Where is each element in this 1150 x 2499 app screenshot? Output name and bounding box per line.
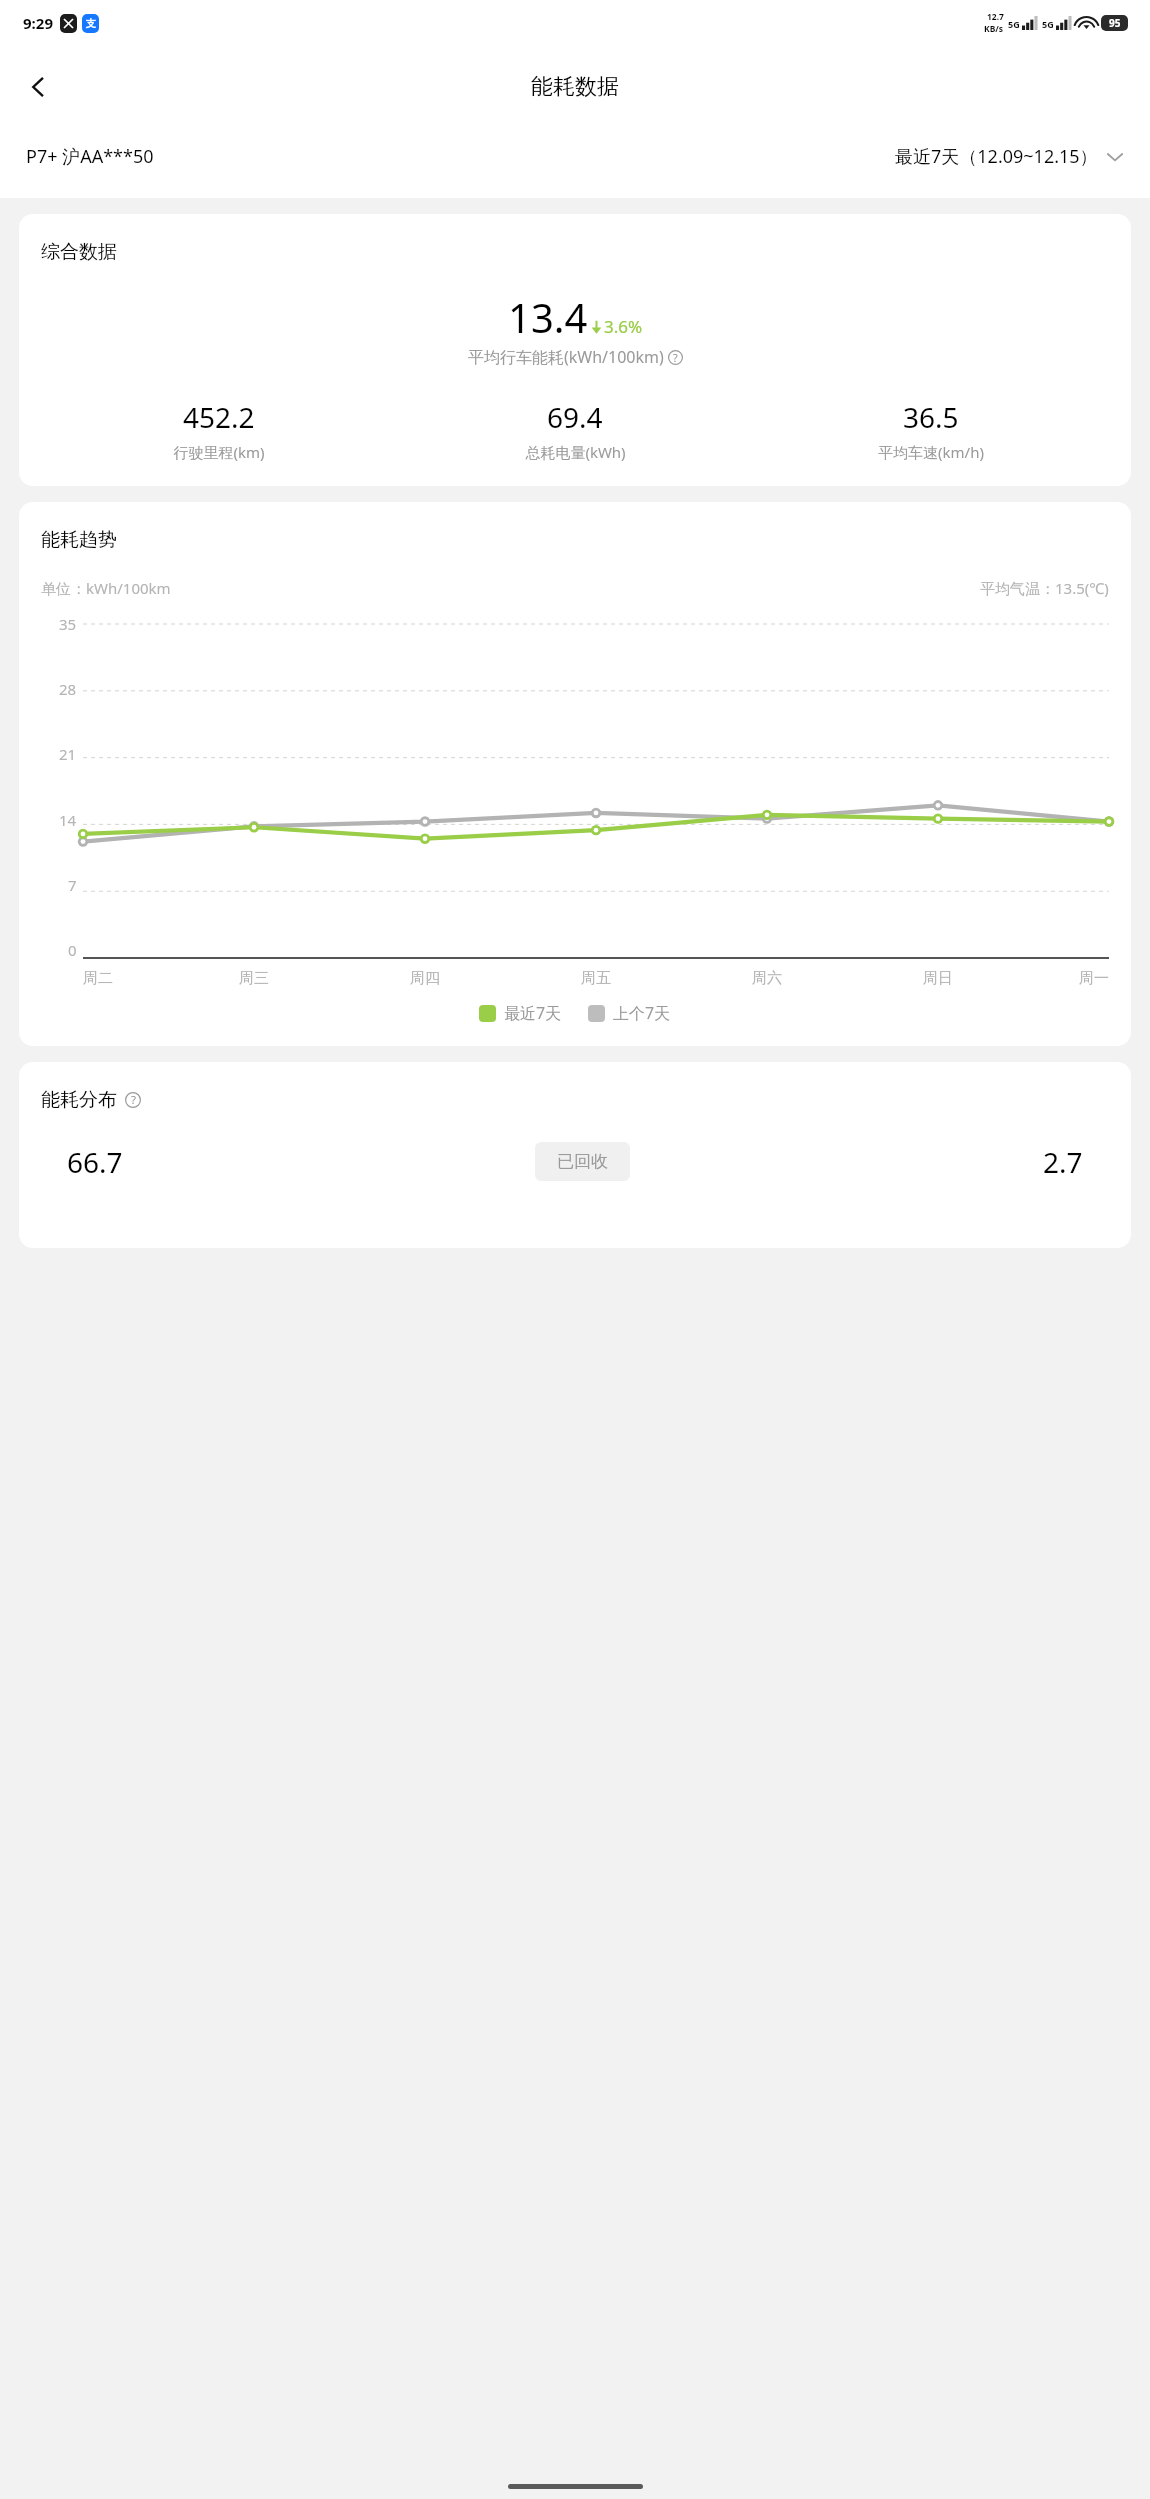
- staticText: 35: [59, 614, 77, 634]
- staticText: 36.5: [903, 398, 959, 436]
- staticText: 452.2: [183, 398, 255, 436]
- staticText: 行驶里程(km): [173, 442, 265, 462]
- staticText: 28: [59, 679, 77, 699]
- button[interactable]: 最近7天: [479, 1002, 562, 1024]
- staticText: 平均气温：13.5(℃): [980, 578, 1109, 598]
- staticText: 平均车速(km/h): [878, 442, 984, 462]
- staticText: 5G: [1008, 18, 1020, 30]
- staticText: 69.4: [547, 398, 603, 436]
- button[interactable]: 综合数据: [19, 214, 1131, 486]
- staticText: 综合数据: [41, 240, 117, 264]
- staticText: 5G: [1042, 18, 1054, 30]
- staticText: 9:29: [23, 13, 53, 33]
- staticText: 周二: [83, 969, 113, 988]
- staticText: 单位：kWh/100km: [41, 578, 171, 598]
- staticText: KB/s: [984, 23, 1004, 35]
- button[interactable]: 上个7天: [588, 1002, 671, 1024]
- staticText: 66.7: [67, 1143, 123, 1181]
- staticText: 0: [68, 940, 77, 960]
- button[interactable]: 最近7天（12.09~12.15）: [895, 144, 1124, 169]
- staticText: 最近7天（12.09~12.15）: [895, 144, 1098, 169]
- staticText: 平均行车能耗(kWh/100km): [468, 346, 664, 368]
- button[interactable]: Back: [10, 58, 68, 116]
- staticText: 总耗电量(kWh): [525, 442, 626, 462]
- staticText: 最近7天: [504, 1002, 562, 1024]
- staticText: 周日: [923, 969, 953, 988]
- staticText: 周五: [581, 969, 611, 988]
- staticText: 能耗分布: [41, 1088, 117, 1112]
- button[interactable]: 能耗趋势: [19, 502, 1131, 1046]
- staticText: 2.7: [1043, 1143, 1083, 1181]
- staticText: 周四: [410, 969, 440, 988]
- staticText: 上个7天: [613, 1002, 671, 1024]
- button[interactable]: 能耗分布: [19, 1062, 1131, 1248]
- staticText: 周一: [1079, 969, 1109, 988]
- staticText: 95: [1109, 16, 1121, 30]
- staticText: 3.6%: [604, 315, 643, 338]
- staticText: 能耗趋势: [41, 528, 117, 552]
- staticText: 14: [59, 810, 77, 830]
- staticText: 7: [68, 875, 77, 895]
- button[interactable]: P7+ 沪AA***50: [26, 144, 154, 169]
- staticText: ?: [673, 350, 678, 365]
- staticText: 21: [59, 744, 77, 764]
- staticText: 支: [86, 17, 96, 30]
- staticText: 周六: [752, 969, 782, 988]
- staticText: 13.4: [508, 290, 588, 344]
- button[interactable]: 已回收: [535, 1142, 630, 1181]
- staticText: ?: [131, 1092, 136, 1108]
- button[interactable]: 452.2: [41, 398, 397, 462]
- staticText: 周三: [239, 969, 269, 988]
- staticText: 12.7: [987, 11, 1004, 23]
- button[interactable]: 69.4: [397, 398, 753, 462]
- staticText: 能耗数据: [531, 73, 619, 101]
- staticText: 已回收: [557, 1151, 608, 1172]
- button[interactable]: 36.5: [753, 398, 1109, 462]
